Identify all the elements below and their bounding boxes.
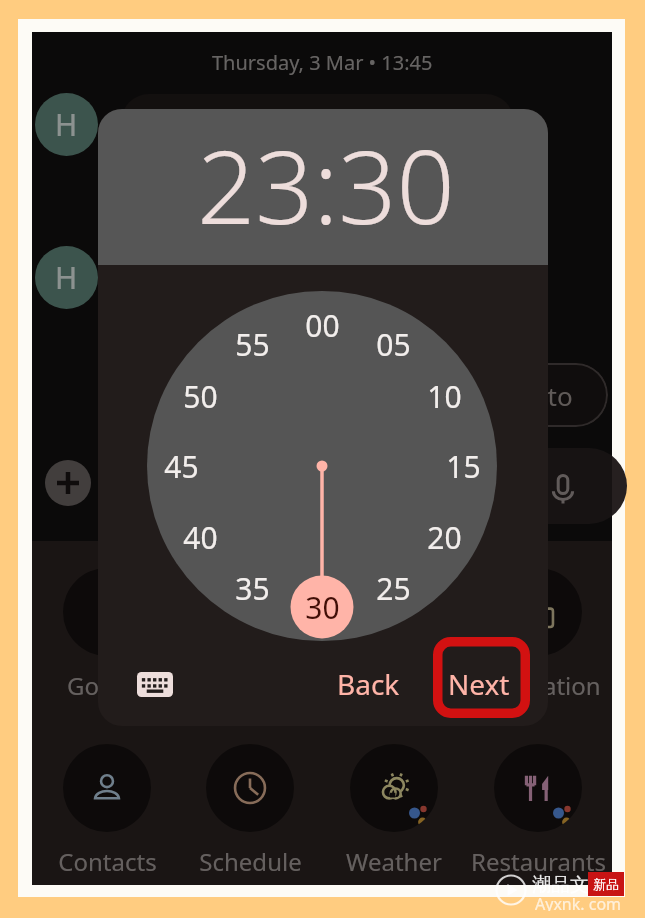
staticText: Back <box>337 665 400 703</box>
staticText: 40 <box>183 517 218 558</box>
button[interactable]: 25 <box>363 565 423 611</box>
staticText: 00 <box>305 305 340 346</box>
button[interactable]: Add <box>45 460 91 506</box>
staticText: 潮品文 <box>532 873 589 897</box>
button[interactable]: 30 <box>292 584 352 630</box>
staticText: 55 <box>235 324 270 365</box>
staticText: 新品 <box>593 876 619 892</box>
button[interactable]: Photo <box>464 363 608 427</box>
button[interactable]: 45 <box>151 443 211 489</box>
button[interactable]: Next <box>438 656 520 712</box>
staticText: 35 <box>235 568 270 609</box>
staticText: 10 <box>427 376 462 417</box>
staticText: Thursday, 3 Mar • 13:45 <box>212 49 433 76</box>
staticText: Ayxnk. com <box>535 893 622 911</box>
button[interactable]: Schedule <box>178 744 322 878</box>
button[interactable]: H <box>35 246 98 309</box>
button[interactable]: Translation <box>466 568 610 702</box>
staticText: Translation <box>475 669 601 702</box>
staticText: Google <box>67 669 148 702</box>
staticText: 30 <box>305 587 340 628</box>
button[interactable]: 10 <box>414 373 474 419</box>
staticText: 25 <box>376 568 411 609</box>
staticText: 20 <box>427 517 462 558</box>
button[interactable]: Navigate <box>322 568 466 702</box>
staticText: 45 <box>164 446 199 487</box>
staticText: Contacts <box>58 845 157 878</box>
button[interactable]: Music <box>178 568 322 702</box>
button[interactable]: H <box>35 93 98 156</box>
staticText: 15 <box>446 446 481 487</box>
staticText: Photo <box>500 378 573 413</box>
staticText: H <box>55 104 78 145</box>
staticText: 05 <box>376 324 411 365</box>
staticText: Weather <box>346 845 442 878</box>
staticText: Schedule <box>199 845 302 878</box>
button[interactable]: Contacts <box>35 744 179 878</box>
staticText: Next <box>448 665 510 703</box>
button[interactable]: 15 <box>433 443 493 489</box>
staticText: H <box>55 257 78 298</box>
button[interactable]: 50 <box>170 373 230 419</box>
button[interactable]: Switch to text input <box>127 656 183 712</box>
button[interactable]: Microphone <box>487 448 627 524</box>
button[interactable]: 00 <box>292 302 352 348</box>
button[interactable]: Back <box>326 656 410 712</box>
button[interactable]: 55 <box>222 321 282 367</box>
button[interactable]: 35 <box>222 565 282 611</box>
button[interactable]: 20 <box>414 514 474 560</box>
button[interactable]: Restaurants <box>466 744 610 878</box>
staticText: Restaurants <box>471 845 606 878</box>
button[interactable]: 40 <box>170 514 230 560</box>
button[interactable]: Weather <box>322 744 466 878</box>
staticText: 50 <box>183 376 218 417</box>
button[interactable]: Google <box>35 568 179 702</box>
button[interactable]: 05 <box>363 321 423 367</box>
staticText: Navigate <box>344 669 445 702</box>
staticText: 23:30 <box>197 115 455 254</box>
